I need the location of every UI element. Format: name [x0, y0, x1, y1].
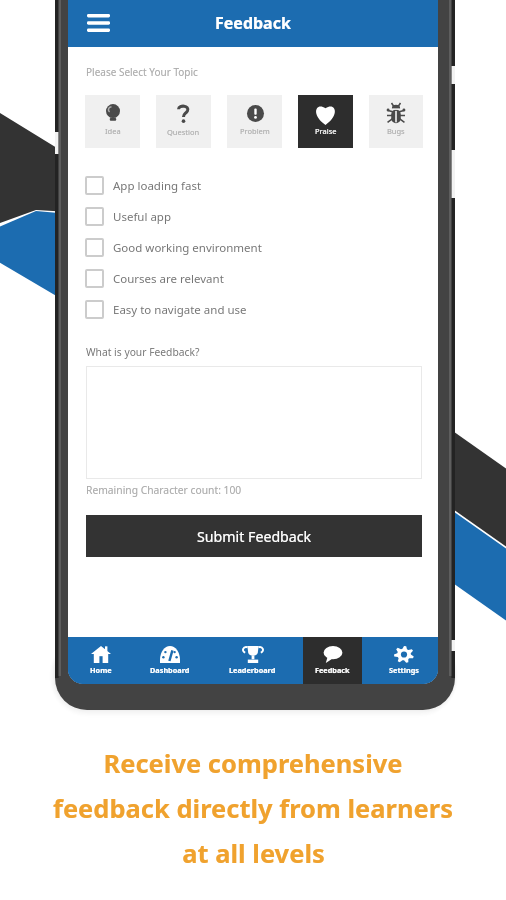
- button[interactable]: Useful app: [85, 201, 421, 232]
- staticText: Submit Feedback: [197, 527, 312, 546]
- staticText: Receive comprehensive: [103, 746, 403, 781]
- staticText: What is your Feedback?: [86, 345, 200, 359]
- button[interactable]: Good working environment: [85, 232, 421, 263]
- staticText: Settings: [389, 665, 419, 675]
- staticText: App loading fast: [113, 178, 202, 194]
- staticText: Home: [90, 665, 112, 675]
- button[interactable]: Submit Feedback: [86, 515, 422, 557]
- staticText: Bugs: [387, 126, 405, 136]
- button[interactable]: Leaderboard: [211, 637, 293, 684]
- staticText: Feedback: [315, 665, 350, 675]
- button[interactable]: App loading fast: [85, 170, 421, 201]
- staticText: Courses are relevant: [113, 271, 224, 287]
- staticText: Praise: [315, 126, 337, 136]
- button[interactable]: Settings: [369, 637, 438, 684]
- staticText: Feedback: [215, 12, 291, 34]
- button[interactable]: Feedback text field: [86, 366, 422, 479]
- staticText: Question: [167, 127, 200, 137]
- button[interactable]: Idea: [85, 95, 140, 148]
- staticText: Good working environment: [113, 240, 262, 256]
- button[interactable]: Problem: [227, 95, 282, 148]
- button[interactable]: Question: [156, 95, 211, 148]
- button[interactable]: Easy to navigate and use: [85, 294, 421, 325]
- button[interactable]: Praise: [298, 95, 353, 148]
- staticText: Leaderboard: [229, 665, 276, 675]
- button[interactable]: Feedback: [303, 637, 362, 684]
- staticText: Remaining Character count: 100: [86, 483, 242, 497]
- button[interactable]: Courses are relevant: [85, 263, 421, 294]
- button[interactable]: Home: [68, 637, 134, 684]
- staticText: Useful app: [113, 209, 172, 225]
- button[interactable]: Menu: [82, 7, 114, 39]
- staticText: Idea: [105, 126, 121, 136]
- staticText: at all levels: [182, 836, 325, 871]
- staticText: Problem: [240, 126, 270, 136]
- staticText: Please Select Your Topic: [86, 65, 198, 79]
- staticText: Easy to navigate and use: [113, 302, 247, 318]
- staticText: Dashboard: [150, 665, 190, 675]
- button[interactable]: Dashboard: [134, 637, 205, 684]
- button[interactable]: Bugs: [369, 95, 423, 148]
- staticText: feedback directly from learners: [53, 791, 453, 826]
